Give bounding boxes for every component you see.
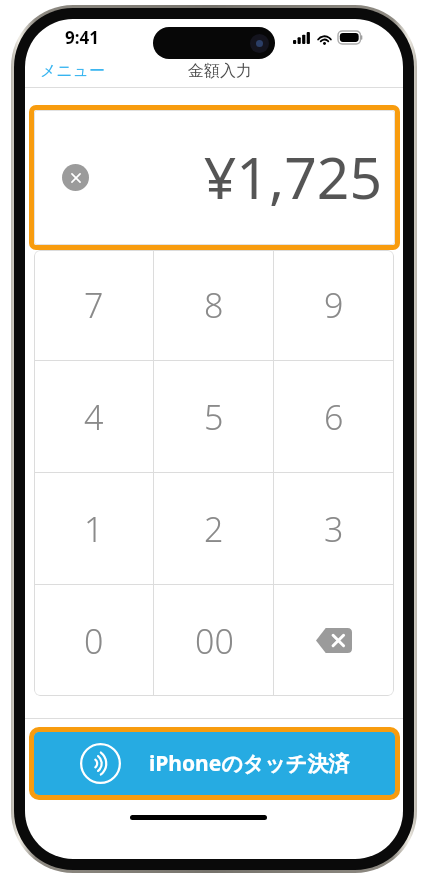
staticText: 5 [204, 394, 224, 440]
staticText: 2 [204, 506, 224, 552]
button[interactable]: 9 [274, 250, 394, 360]
button[interactable]: 6 [274, 361, 394, 472]
staticText: ¥1,725 [203, 138, 382, 216]
button[interactable]: Backspace [274, 585, 394, 696]
button[interactable]: 7 [34, 250, 154, 360]
staticText: 9:41 [65, 26, 99, 49]
staticText: メニュー [40, 61, 106, 81]
button[interactable]: Clear amount [34, 110, 395, 245]
button[interactable]: 4 [34, 361, 154, 472]
button[interactable]: Clear amount [62, 164, 89, 191]
staticText: 9 [324, 282, 344, 328]
button[interactable]: 0 [34, 585, 154, 696]
button[interactable]: 5 [154, 361, 274, 472]
staticText: 1 [84, 506, 104, 552]
staticText: 0 [84, 618, 104, 664]
staticText: 8 [204, 282, 224, 328]
button[interactable]: 3 [274, 473, 394, 584]
button[interactable]: メニュー [32, 57, 114, 85]
button[interactable]: 2 [154, 473, 274, 584]
staticText: 金額入力 [188, 61, 252, 81]
staticText: 4 [84, 394, 104, 440]
staticText: 00 [195, 618, 234, 664]
staticText: iPhoneのタッチ決済 [149, 749, 350, 778]
button[interactable]: 1 [34, 473, 154, 584]
staticText: 3 [324, 506, 344, 552]
staticText: 6 [324, 394, 344, 440]
staticText: 7 [84, 282, 104, 328]
button[interactable]: 00 [154, 585, 274, 696]
button[interactable]: iPhoneのタッチ決済 [34, 732, 395, 795]
button[interactable]: 8 [154, 250, 274, 360]
